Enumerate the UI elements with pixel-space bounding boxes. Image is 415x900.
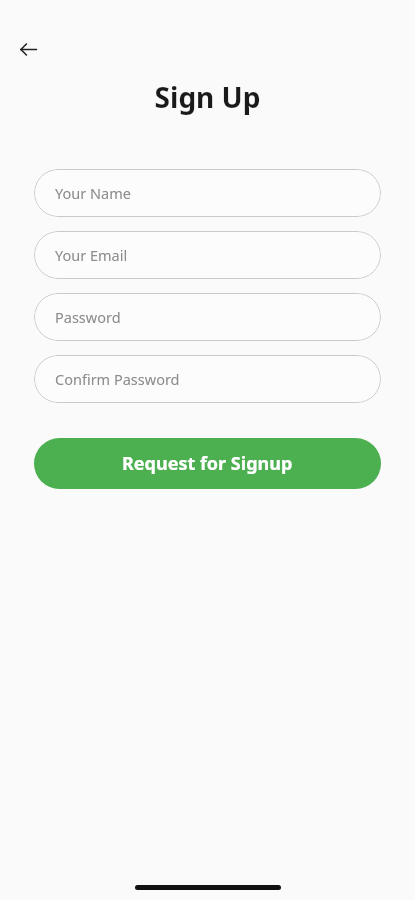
button[interactable]: Your Email [34, 231, 381, 279]
button[interactable]: Confirm Password [34, 355, 381, 403]
staticText: Confirm Password [55, 369, 180, 389]
staticText: Request for Signup [122, 451, 293, 476]
staticText: Your Email [55, 245, 128, 265]
staticText: Your Name [55, 183, 131, 203]
staticText: Sign Up [0, 78, 415, 116]
button[interactable]: Back [12, 33, 44, 65]
button[interactable]: Your Name [34, 169, 381, 217]
button[interactable]: Request for Signup [34, 438, 381, 489]
button[interactable]: Password [34, 293, 381, 341]
staticText: Password [55, 307, 121, 327]
